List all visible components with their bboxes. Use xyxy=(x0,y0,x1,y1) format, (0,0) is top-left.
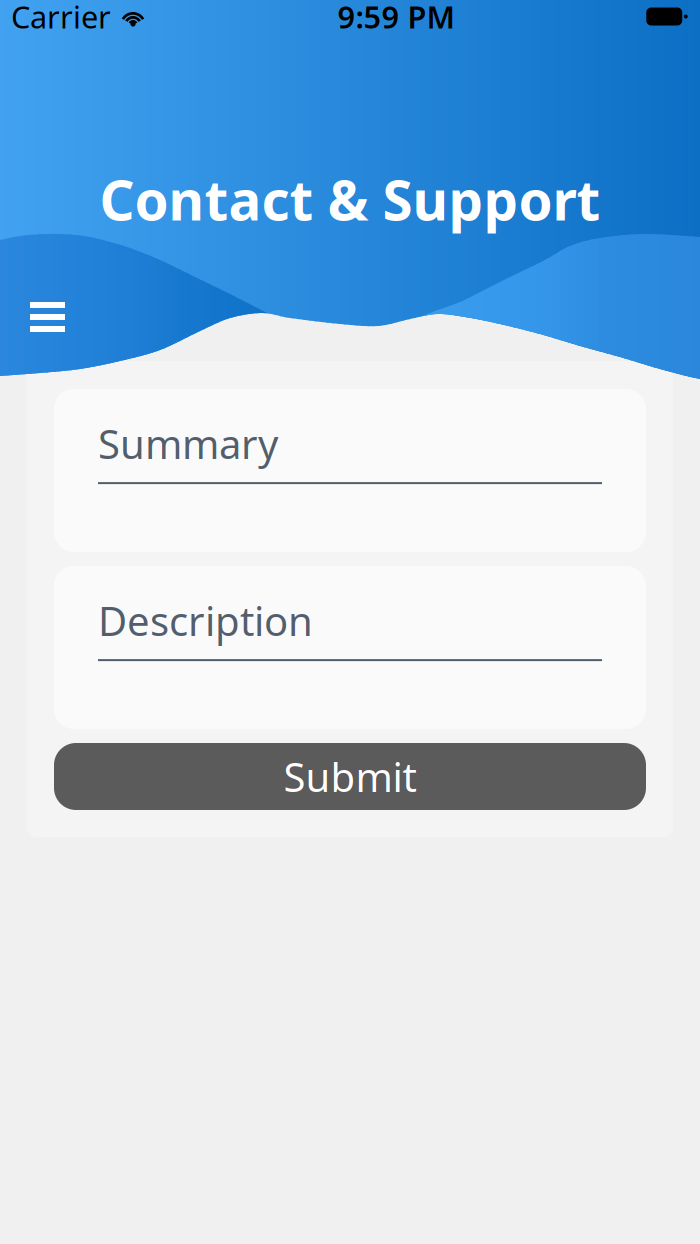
staticText: Description xyxy=(98,594,313,647)
staticText: Submit xyxy=(283,750,416,803)
staticText: Carrier xyxy=(11,0,111,37)
staticText: Contact & Support xyxy=(99,163,600,236)
staticText: Summary xyxy=(98,417,278,470)
staticText: 9:59 PM xyxy=(337,0,454,37)
button[interactable]: Submit xyxy=(54,743,646,810)
button[interactable]: Menu xyxy=(15,287,80,347)
